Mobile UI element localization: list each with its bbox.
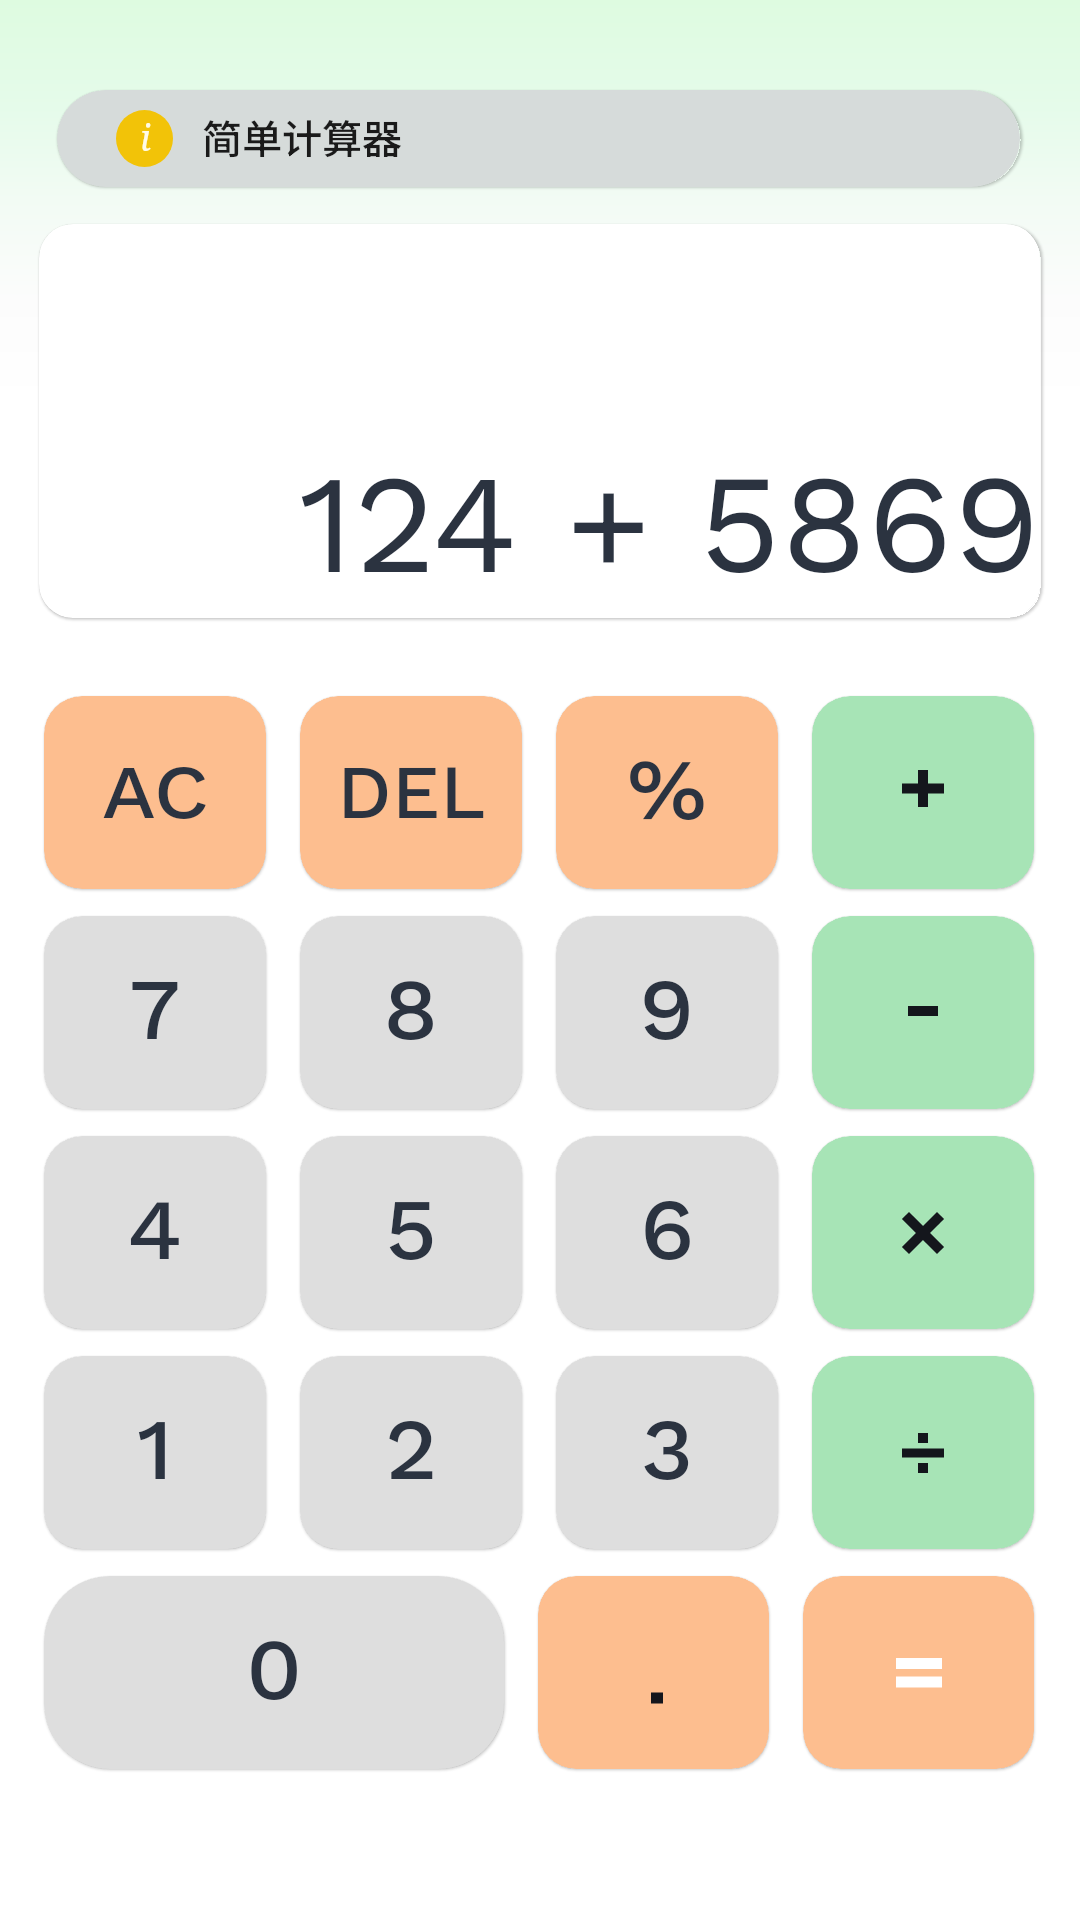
staticText: 8 [383, 959, 439, 1060]
staticText: i [140, 113, 151, 162]
button[interactable]: DEL [300, 696, 522, 889]
button[interactable]: 5 [300, 1136, 522, 1329]
staticText: DEL [337, 747, 486, 836]
staticText: % [627, 739, 707, 840]
button[interactable]: 7 [44, 916, 266, 1109]
button[interactable]: AC [44, 696, 266, 889]
staticText: 4 [127, 1179, 183, 1280]
staticText: 7 [129, 959, 181, 1060]
staticText: AC [102, 747, 209, 836]
button[interactable]: 9 [556, 916, 778, 1109]
button[interactable]: 6 [556, 1136, 778, 1329]
staticText: 6 [640, 1179, 695, 1280]
staticText: 0 [246, 1619, 303, 1720]
button[interactable]: Minus [812, 916, 1034, 1109]
button[interactable]: 2 [300, 1356, 522, 1549]
button[interactable]: Decimal point [538, 1576, 769, 1769]
button[interactable]: 0 [44, 1576, 504, 1769]
button[interactable]: 8 [300, 916, 522, 1109]
button[interactable]: % [556, 696, 778, 889]
button[interactable]: 4 [44, 1136, 266, 1329]
staticText: 3 [641, 1399, 694, 1500]
staticText: 5 [385, 1179, 438, 1280]
button[interactable]: Plus [812, 696, 1034, 889]
staticText: 简单计算器 [202, 108, 402, 166]
staticText: 1 [137, 1399, 174, 1500]
button[interactable]: Equals [803, 1576, 1034, 1769]
staticText: 9 [639, 959, 695, 1060]
button[interactable]: 1 [44, 1356, 266, 1549]
staticText: 2 [385, 1399, 438, 1500]
button[interactable]: Divide [812, 1356, 1034, 1549]
staticText: 124 + 5869 [298, 444, 1040, 606]
button[interactable]: 3 [556, 1356, 778, 1549]
button[interactable]: i [57, 90, 1020, 187]
button[interactable]: Multiply [812, 1136, 1034, 1329]
